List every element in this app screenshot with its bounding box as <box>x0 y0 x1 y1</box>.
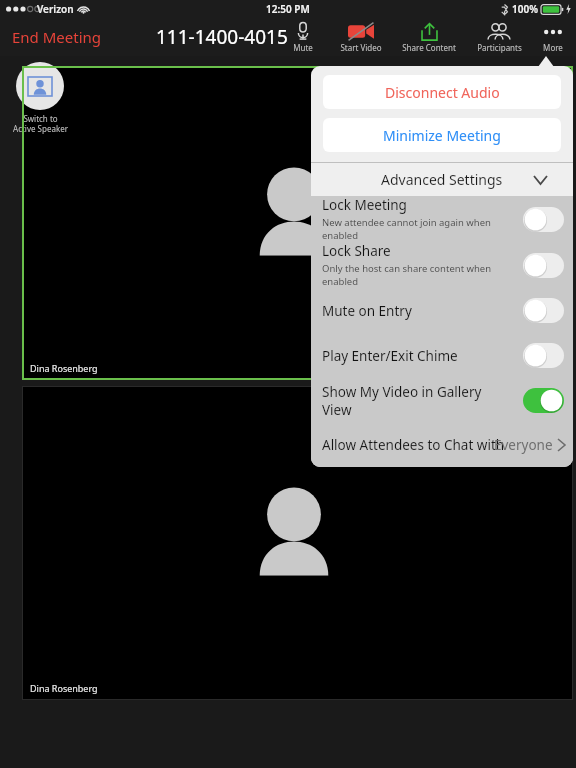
other: Participants <box>488 23 510 40</box>
button[interactable]: More <box>532 18 574 56</box>
button[interactable] <box>523 343 564 368</box>
button[interactable]: Dina Rosenberg <box>22 386 573 700</box>
button[interactable]: Allow Attendees to Chat with <box>311 423 573 467</box>
staticText: New attendee cannot join again when enab… <box>322 216 513 242</box>
staticText: Minimize Meeting <box>383 126 501 145</box>
staticText: Lock Meeting <box>322 196 407 214</box>
button[interactable]: Play Enter/Exit Chime <box>311 333 573 378</box>
button[interactable]: Share Content <box>392 18 466 56</box>
staticText: Lock Share <box>322 242 391 260</box>
staticText: Start Video <box>340 42 382 53</box>
staticText: Share Content <box>402 42 456 53</box>
button[interactable]: Advanced Settings <box>311 163 573 196</box>
button[interactable] <box>523 388 564 413</box>
button[interactable] <box>523 298 564 323</box>
button[interactable]: Show My Video in Gallery View <box>311 378 573 423</box>
staticText: 100% <box>512 2 538 16</box>
staticText: Verizon <box>37 2 74 16</box>
button[interactable]: Minimize Meeting <box>323 118 561 152</box>
button[interactable]: Lock Share <box>311 242 573 288</box>
button[interactable] <box>523 207 564 232</box>
staticText: Everyone <box>494 436 553 454</box>
button[interactable] <box>523 253 564 278</box>
staticText: Switch to Active Speaker <box>13 113 68 134</box>
staticText: Mute <box>293 42 313 53</box>
other: More <box>543 29 563 35</box>
staticText: 111-1400-4015 <box>156 24 288 50</box>
button[interactable]: Disconnect Audio <box>323 75 561 109</box>
staticText: 12:50 PM <box>266 2 310 16</box>
staticText: Play Enter/Exit Chime <box>322 347 458 365</box>
button[interactable]: Mute on Entry <box>311 288 573 333</box>
staticText: Participants <box>477 42 522 53</box>
staticText: Advanced Settings <box>381 170 503 189</box>
button[interactable]: Lock Meeting <box>311 196 573 242</box>
button[interactable]: End Meeting <box>6 22 108 52</box>
button[interactable]: Start Video <box>330 18 392 56</box>
button[interactable]: Dina Rosenberg <box>22 66 573 380</box>
staticText: End Meeting <box>12 27 102 47</box>
staticText: Only the host can share content when ena… <box>322 262 513 288</box>
staticText: Allow Attendees to Chat with <box>322 436 505 454</box>
other: Start Video <box>348 23 374 40</box>
other: Share Content <box>421 23 438 41</box>
button[interactable]: Participants <box>466 18 532 56</box>
button[interactable]: Mute <box>276 18 330 56</box>
staticText: Mute on Entry <box>322 302 412 320</box>
staticText: Dina Rosenberg <box>30 682 98 694</box>
button[interactable]: Switch to Active Speaker <box>0 62 80 134</box>
staticText: Disconnect Audio <box>385 83 500 102</box>
staticText: Show My Video in Gallery View <box>322 383 513 419</box>
staticText: Dina Rosenberg <box>30 362 98 374</box>
staticText: More <box>543 42 563 53</box>
other: Mute <box>296 22 310 41</box>
